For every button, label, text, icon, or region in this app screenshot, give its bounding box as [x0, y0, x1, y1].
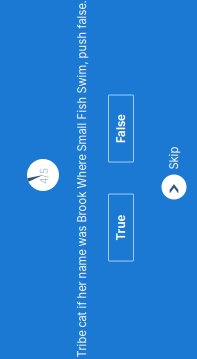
staticText: 4/5 — [94, 119, 110, 131]
staticText: Tribe cat if her name was Brook Where Sm… — [0, 156, 197, 170]
staticText: Skip — [108, 248, 131, 262]
button[interactable]: False — [116, 189, 183, 214]
button[interactable]: Skip — [78, 242, 131, 267]
button[interactable]: True — [17, 189, 84, 214]
